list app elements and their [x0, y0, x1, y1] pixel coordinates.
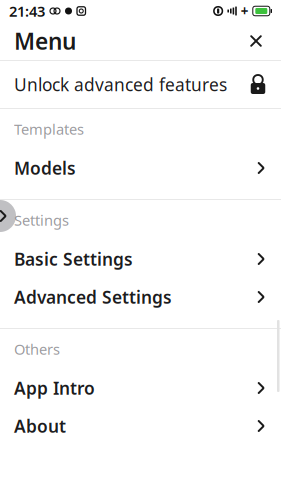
staticText: About — [14, 414, 66, 437]
staticText: Others — [14, 339, 60, 359]
staticText: App Intro — [14, 376, 95, 399]
staticText: Settings — [14, 210, 69, 230]
staticText: Templates — [14, 119, 84, 139]
staticText: Advanced Settings — [14, 285, 172, 308]
staticText: Unlock advanced features — [14, 73, 227, 96]
staticText: 21:43 — [9, 1, 45, 21]
button[interactable]: Advanced Settings — [0, 278, 281, 316]
staticText: Models — [14, 156, 76, 179]
button[interactable]: About — [0, 407, 281, 445]
button[interactable]: Close — [241, 26, 271, 56]
button[interactable]: Models — [0, 149, 281, 187]
button[interactable]: Unlock advanced features — [0, 61, 281, 108]
staticText: Basic Settings — [14, 247, 133, 270]
button[interactable]: App Intro — [0, 369, 281, 407]
button[interactable]: Basic Settings — [0, 240, 281, 278]
staticText: + — [241, 2, 249, 20]
staticText: Menu — [14, 26, 76, 56]
